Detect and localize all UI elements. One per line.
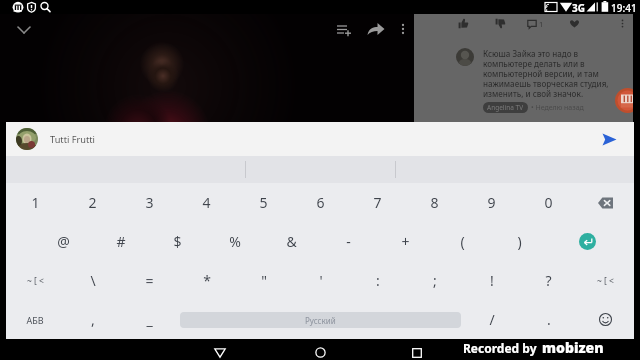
button[interactable]: ) [491, 222, 548, 261]
button[interactable]: % [206, 222, 263, 261]
button[interactable]: АБВ [6, 300, 64, 339]
staticText: 1 [31, 193, 40, 212]
staticText: & [286, 232, 297, 251]
staticText: 5 [259, 193, 268, 212]
staticText: ? [545, 271, 552, 290]
button[interactable]: Dislike [495, 18, 506, 29]
button[interactable]: Collapse [14, 19, 34, 39]
button[interactable]: More options [393, 19, 413, 39]
button[interactable]: @ [35, 222, 92, 261]
staticText: 3G [572, 1, 585, 15]
staticText: Angelina TV [487, 103, 524, 112]
button[interactable]: ~ [ < [6, 261, 64, 300]
button[interactable]: ' [292, 261, 349, 300]
staticText: 2 [88, 193, 97, 212]
button[interactable]: ~ [ < [577, 261, 634, 300]
staticText: + [401, 232, 410, 251]
staticText: ' [319, 271, 323, 290]
staticText: - [346, 232, 351, 251]
button[interactable]: , [64, 300, 121, 339]
staticText: 19:41 [611, 1, 637, 15]
staticText: 3 [145, 193, 154, 212]
staticText: , [91, 310, 95, 329]
staticText: АБВ [26, 314, 44, 326]
button[interactable]: * [178, 261, 235, 300]
staticText: # [116, 232, 126, 251]
button[interactable]: Recents [406, 342, 428, 360]
button[interactable]: ? [520, 261, 577, 300]
staticText: @ [57, 232, 70, 251]
button[interactable]: + [377, 222, 434, 261]
button[interactable]: Emoji [577, 300, 634, 339]
staticText: ( [460, 232, 465, 251]
staticText: mobizen [542, 338, 604, 357]
button[interactable]: Русский [180, 312, 461, 328]
staticText: ~ [ < [597, 275, 614, 287]
staticText: 7 [373, 193, 382, 212]
staticText: _ [146, 310, 153, 329]
button[interactable]: 6 [292, 183, 349, 222]
staticText: Recorded by [463, 340, 537, 356]
button[interactable]: 3 [121, 183, 178, 222]
button[interactable]: - [320, 222, 377, 261]
staticText: 6 [316, 193, 325, 212]
staticText: $ [173, 232, 182, 251]
button[interactable]: 8 [406, 183, 463, 222]
button[interactable]: / [463, 300, 520, 339]
staticText: % [229, 232, 241, 251]
button[interactable]: & [263, 222, 320, 261]
button[interactable]: Add to playlist [333, 19, 355, 41]
button[interactable]: . [520, 300, 577, 339]
button[interactable]: 2 [64, 183, 121, 222]
staticText: Ксюша Зайка это надо в компьютере делать… [483, 48, 615, 99]
staticText: Tutti Frutti [50, 133, 95, 146]
button[interactable]: Favourite [569, 18, 580, 29]
staticText: : [376, 271, 380, 290]
staticText: \ [90, 271, 96, 290]
staticText: / [489, 310, 495, 329]
button[interactable]: # [92, 222, 149, 261]
button[interactable]: Channel [615, 88, 633, 113]
staticText: 4 [202, 193, 211, 212]
staticText: 1 [539, 19, 544, 29]
button[interactable]: _ [121, 300, 178, 339]
button[interactable]: 9 [463, 183, 520, 222]
staticText: ; [433, 271, 437, 290]
button[interactable]: 5 [235, 183, 292, 222]
button[interactable]: Backspace [577, 183, 634, 222]
button[interactable]: ; [406, 261, 463, 300]
staticText: 0 [544, 193, 553, 212]
button[interactable]: 0 [520, 183, 577, 222]
button[interactable]: ( [434, 222, 491, 261]
button[interactable]: ! [463, 261, 520, 300]
button[interactable]: " [235, 261, 292, 300]
staticText: ~ [ < [27, 275, 44, 287]
button[interactable]: \ [64, 261, 121, 300]
staticText: . [547, 310, 551, 329]
button[interactable]: 1 [6, 183, 64, 222]
button[interactable]: Back [209, 342, 231, 360]
staticText: ) [517, 232, 522, 251]
button[interactable]: 1 [527, 18, 544, 29]
button[interactable]: Send [594, 124, 624, 154]
button[interactable]: : [349, 261, 406, 300]
button[interactable]: = [121, 261, 178, 300]
staticText: 8 [430, 193, 439, 212]
button[interactable]: More [617, 18, 628, 29]
button[interactable]: Home [309, 342, 331, 360]
staticText: ! [490, 271, 494, 290]
staticText: * [203, 271, 211, 290]
button[interactable]: 4 [178, 183, 235, 222]
staticText: = [145, 271, 154, 290]
staticText: • Неделю назад [531, 103, 584, 113]
staticText: " [261, 271, 267, 290]
staticText: 9 [487, 193, 496, 212]
button[interactable]: Enter [548, 222, 634, 261]
button[interactable]: Share [365, 19, 387, 41]
button[interactable]: $ [149, 222, 206, 261]
button[interactable]: Like [458, 18, 469, 29]
button[interactable]: 7 [349, 183, 406, 222]
